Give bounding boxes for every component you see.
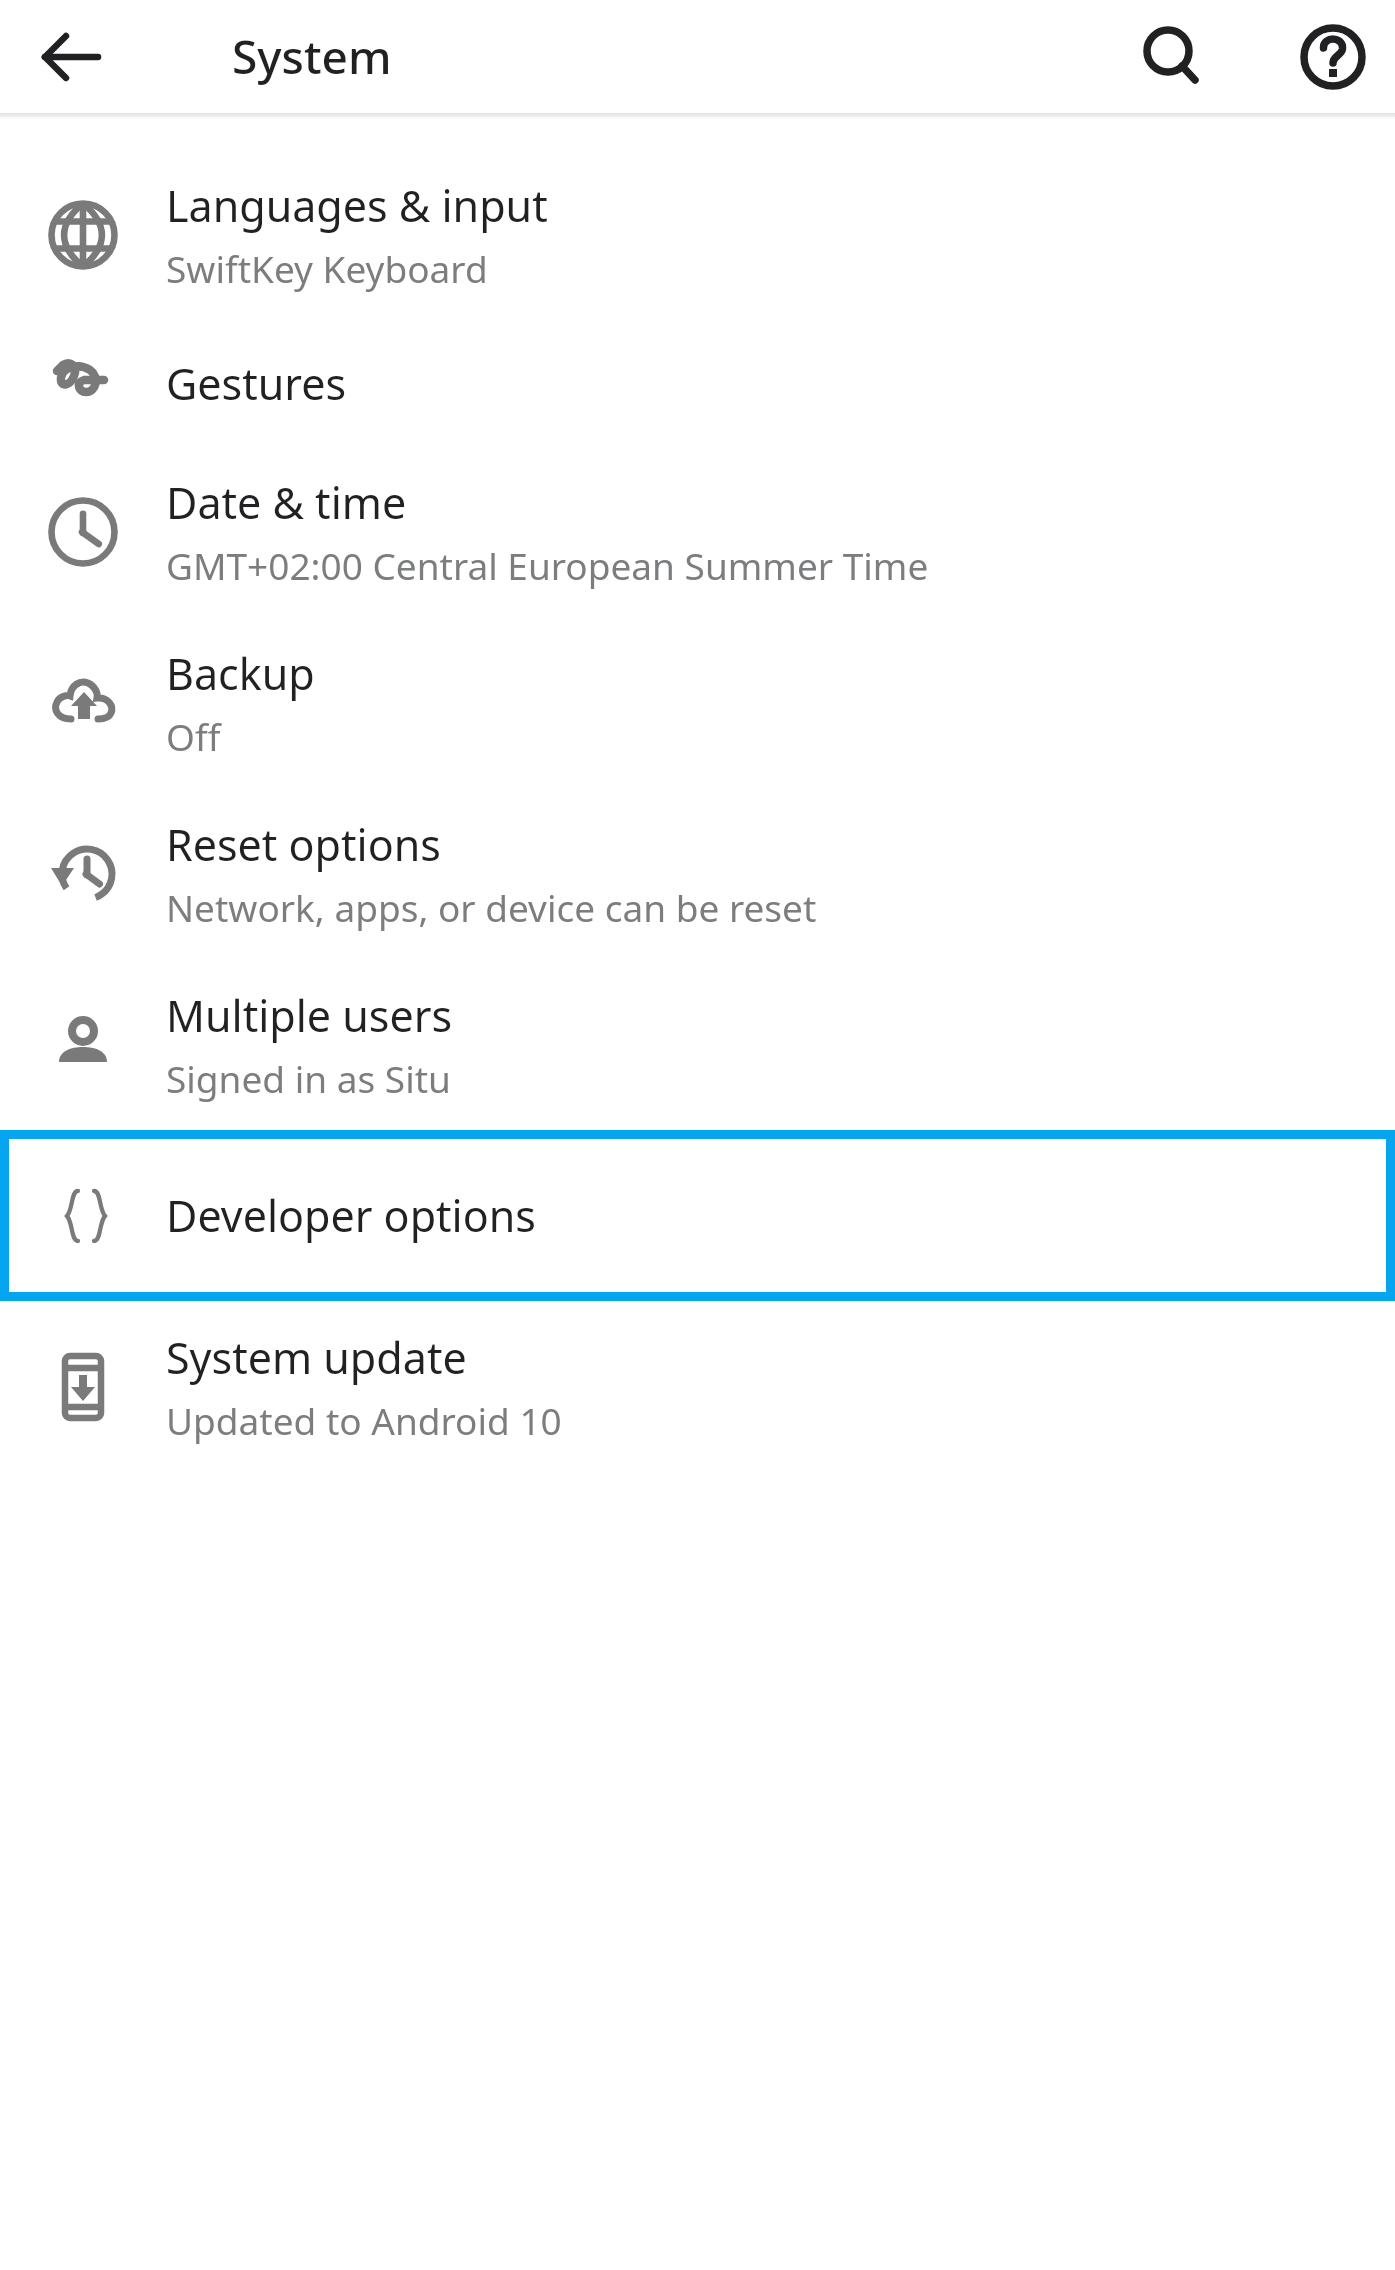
staticText: System: [232, 25, 392, 88]
button[interactable]: Help: [1286, 10, 1380, 104]
staticText: Multiple users: [166, 986, 453, 1045]
other: Gestures: [47, 347, 119, 419]
other: Reset options: [47, 838, 119, 910]
other: Languages and input: [47, 199, 119, 271]
other: Date and time: [47, 496, 119, 568]
button[interactable]: Gestures: [0, 320, 1395, 446]
staticText: Updated to Android 10: [166, 1395, 562, 1445]
button[interactable]: Multiple users: [0, 959, 1395, 1130]
staticText: SwiftKey Keyboard: [166, 243, 488, 293]
staticText: Date & time: [166, 473, 407, 532]
other: Backup: [47, 667, 119, 739]
staticText: Network, apps, or device can be reset: [166, 882, 817, 932]
other: System update: [47, 1351, 119, 1423]
staticText: Gestures: [166, 354, 346, 413]
staticText: Languages & input: [166, 176, 548, 235]
staticText: System update: [166, 1328, 467, 1387]
button[interactable]: Back: [28, 14, 114, 100]
staticText: Backup: [166, 644, 315, 703]
button[interactable]: Backup: [0, 617, 1395, 788]
button[interactable]: Developer options: [0, 1130, 1395, 1301]
button[interactable]: Languages and input: [0, 149, 1395, 320]
button[interactable]: System update: [0, 1301, 1395, 1472]
other: Multiple users: [47, 1009, 119, 1081]
button[interactable]: Search: [1124, 10, 1218, 104]
staticText: Developer options: [166, 1186, 536, 1245]
staticText: GMT+02:00 Central European Summer Time: [166, 540, 929, 590]
staticText: Signed in as Situ: [166, 1053, 451, 1103]
staticText: Reset options: [166, 815, 441, 874]
staticText: Off: [166, 711, 221, 761]
button[interactable]: Reset options: [0, 788, 1395, 959]
button[interactable]: Date and time: [0, 446, 1395, 617]
